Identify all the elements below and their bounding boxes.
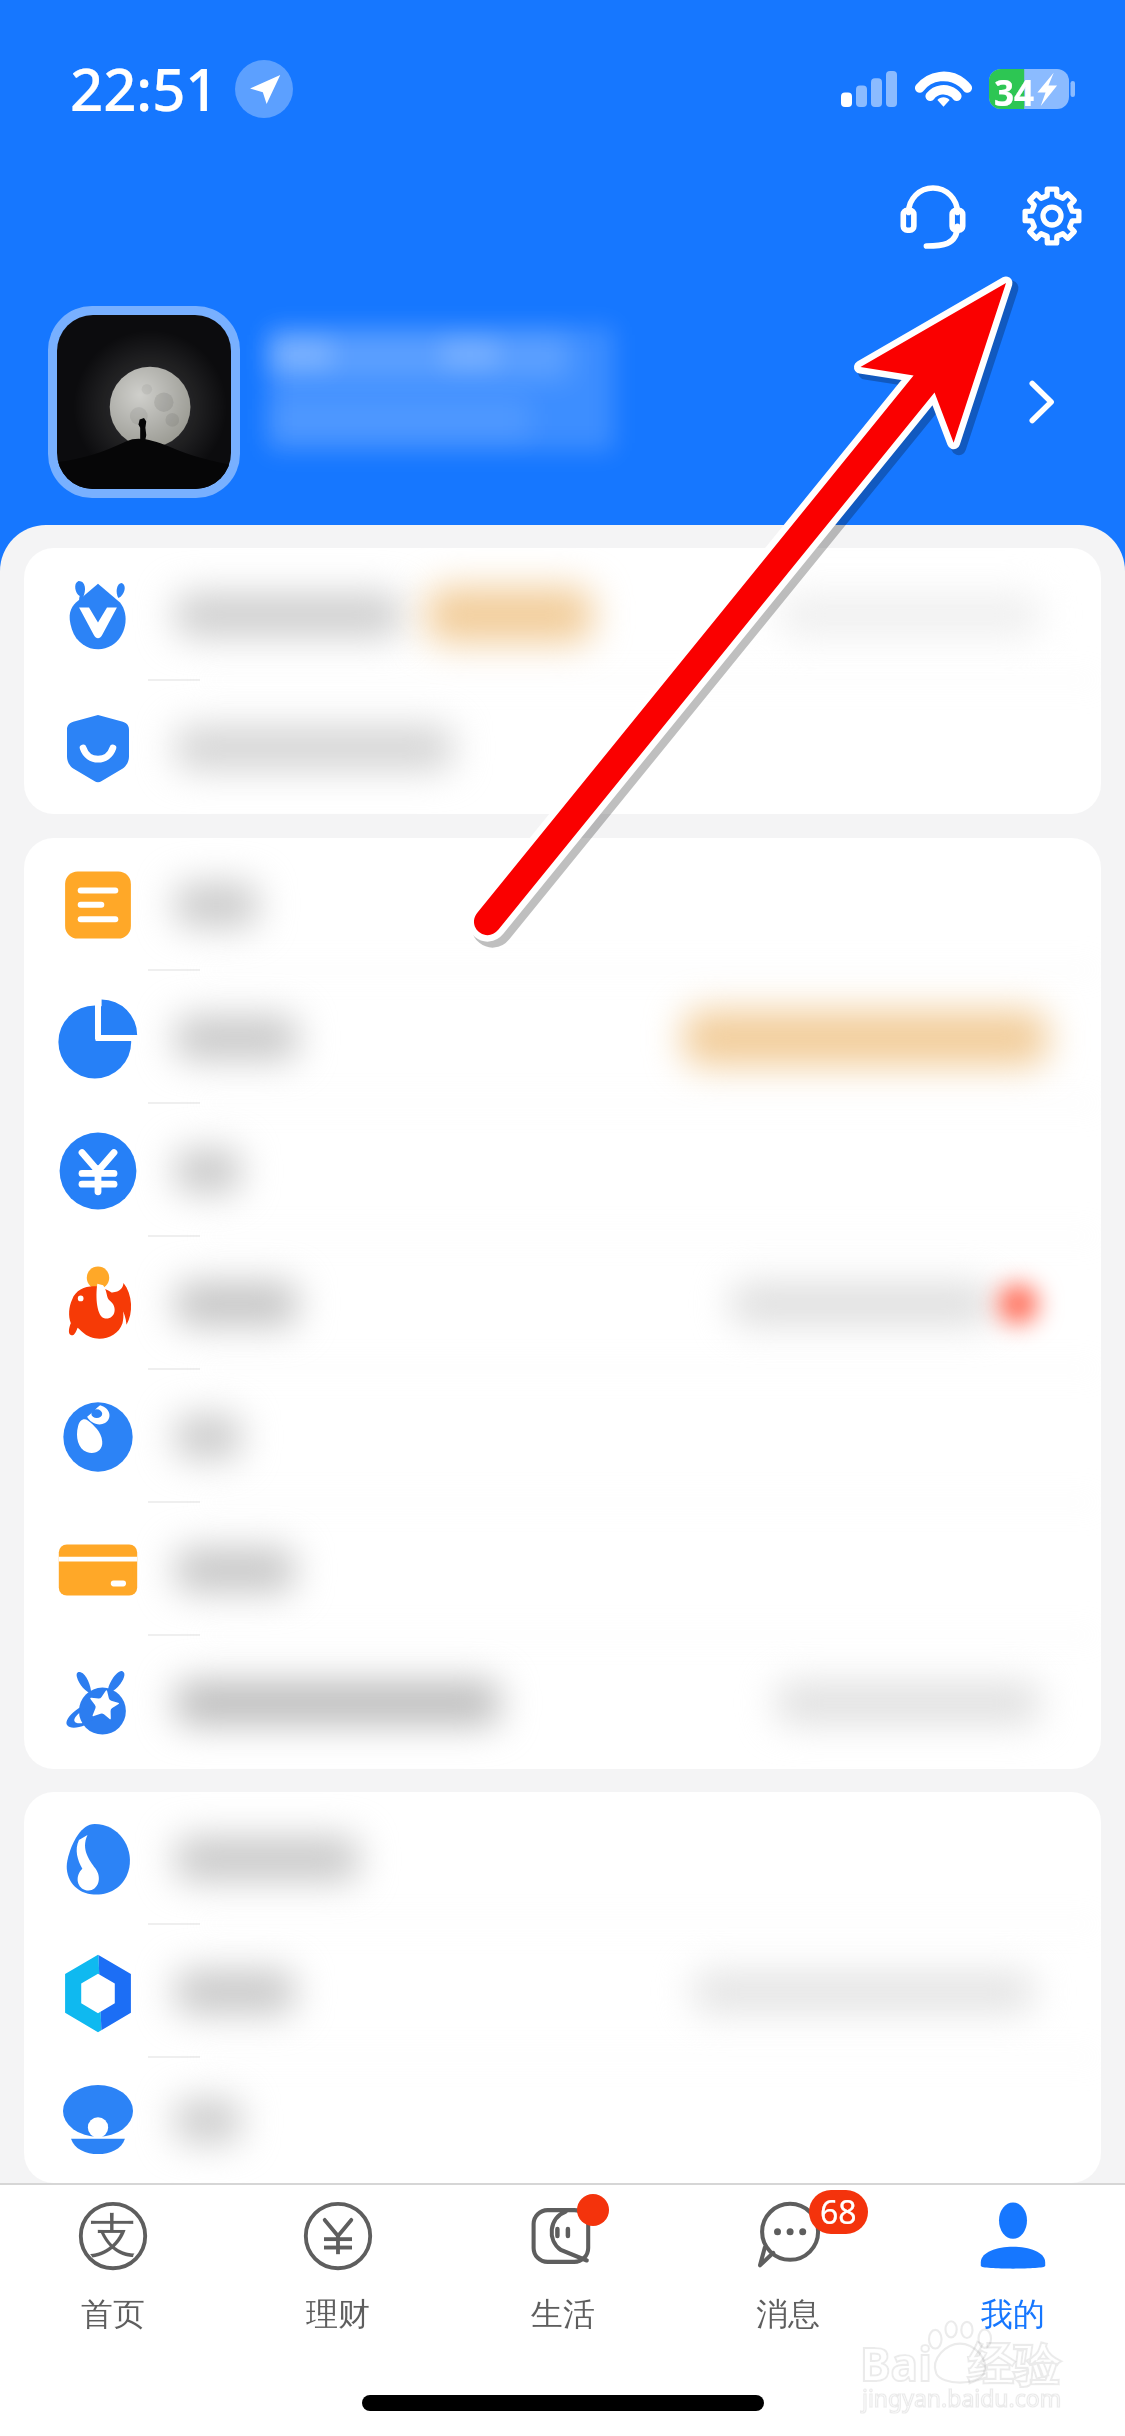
staticText: 首页 [81, 2294, 145, 2334]
button[interactable]: 68 [675, 2185, 900, 2365]
staticText: jingyan.baidu.com [862, 2382, 1062, 2413]
button[interactable] [24, 1503, 1101, 1636]
staticText: 消息 [756, 2294, 820, 2334]
button[interactable] [24, 1792, 1101, 1925]
button[interactable] [24, 681, 1101, 814]
button[interactable]: 生活 [450, 2185, 675, 2365]
button[interactable] [24, 2058, 1101, 2183]
button[interactable] [24, 971, 1101, 1104]
button[interactable]: Customer service [878, 161, 988, 271]
staticText: 22:51 [70, 49, 219, 128]
staticText: 68 [820, 2190, 857, 2234]
button[interactable]: 我的 [900, 2185, 1125, 2365]
button[interactable] [24, 1104, 1101, 1237]
staticText: 生活 [531, 2294, 595, 2334]
button[interactable] [24, 1237, 1101, 1370]
button[interactable]: Settings [997, 161, 1107, 271]
button[interactable]: 支 [0, 2185, 225, 2365]
staticText: 理财 [306, 2294, 370, 2334]
staticText: 我的 [981, 2294, 1045, 2334]
button[interactable] [24, 1636, 1101, 1769]
button[interactable] [24, 1925, 1101, 2058]
button[interactable] [24, 838, 1101, 971]
button[interactable] [0, 302, 1125, 502]
button[interactable] [24, 548, 1101, 681]
button[interactable]: 理财 [225, 2185, 450, 2365]
button[interactable] [24, 1370, 1101, 1503]
staticText: 支 [89, 2206, 137, 2266]
staticText: Bai 经验 [860, 2332, 1060, 2395]
staticText: 34 [994, 69, 1035, 109]
